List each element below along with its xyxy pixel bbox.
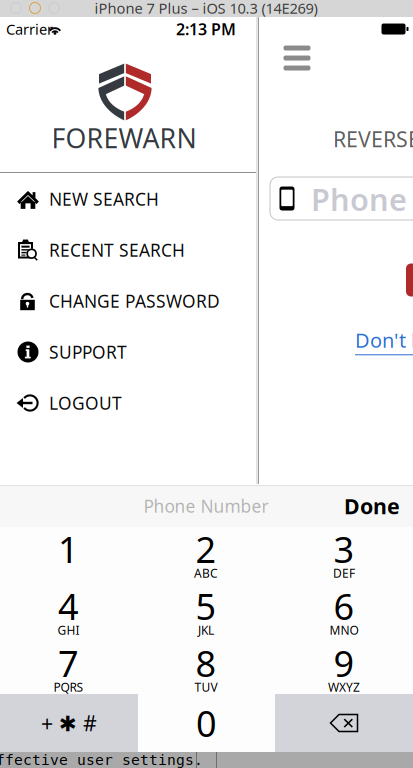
button[interactable]: CHANGE PASSWORD <box>0 275 258 326</box>
button[interactable]: 5 <box>137 590 274 647</box>
button[interactable]: NEW SEARCH <box>0 173 258 224</box>
staticText: Carrier <box>6 19 53 39</box>
staticText: Phone Number <box>143 494 268 517</box>
button[interactable]: 4 <box>0 590 137 647</box>
button[interactable]: Delete <box>275 694 413 752</box>
staticText: GHI <box>57 622 79 638</box>
staticText: 3 <box>333 525 354 573</box>
button[interactable]: RECENT SEARCH <box>0 224 258 275</box>
staticText: 7 <box>58 639 79 687</box>
staticText: NEW SEARCH <box>49 187 159 210</box>
staticText: Don't have an account? <box>355 327 413 353</box>
staticText: FOREWARN <box>51 120 196 156</box>
button[interactable]: SUPPORT <box>0 326 258 377</box>
staticText: 0 <box>196 699 217 747</box>
staticText: LOGOUT <box>49 391 122 414</box>
staticText: 9 <box>333 639 354 687</box>
staticText: 5 <box>195 582 216 630</box>
staticText: CHANGE PASSWORD <box>49 289 220 312</box>
staticText: JKL <box>198 622 214 638</box>
staticText: WXYZ <box>328 679 360 695</box>
button[interactable]: Don't have an account? <box>355 327 413 355</box>
staticText: 8 <box>195 639 216 687</box>
button[interactable]: 2 <box>137 533 274 590</box>
staticText: Phone Number <box>311 179 413 219</box>
staticText: MNO <box>329 622 358 638</box>
button[interactable]: 1 <box>0 533 137 590</box>
staticText: PQRS <box>53 679 83 695</box>
staticText: Done <box>344 492 400 520</box>
button[interactable]: LOGOUT <box>0 377 258 428</box>
staticText: 6 <box>333 582 354 630</box>
button[interactable]: SEARCH <box>406 263 413 296</box>
button[interactable]: 9 <box>275 647 412 704</box>
staticText: 1 <box>58 525 79 573</box>
staticText: e effective user settings. <box>0 752 203 768</box>
button[interactable]: Done <box>341 490 403 522</box>
staticText: DEF <box>333 565 355 581</box>
staticText: 2:13 PM <box>176 18 236 40</box>
button[interactable]: 7 <box>0 647 137 704</box>
staticText: SUPPORT <box>49 340 127 363</box>
staticText: REVERSE PHONE LOOKUP <box>333 125 413 153</box>
staticText: + ✱ # <box>41 709 97 737</box>
staticText: iPhone 7 Plus – iOS 10.3 (14E269) <box>94 0 317 18</box>
staticText: RECENT SEARCH <box>49 238 185 261</box>
staticText: 4 <box>58 582 79 630</box>
staticText: TUV <box>194 679 217 695</box>
staticText: 2 <box>195 525 216 573</box>
staticText: ABC <box>194 565 218 581</box>
button[interactable]: Menu <box>275 38 319 78</box>
button[interactable]: 6 <box>275 590 412 647</box>
button[interactable]: 3 <box>275 533 412 590</box>
button[interactable]: 0 <box>138 694 275 752</box>
button[interactable]: 8 <box>137 647 274 704</box>
button[interactable]: + ✱ # <box>0 694 138 752</box>
